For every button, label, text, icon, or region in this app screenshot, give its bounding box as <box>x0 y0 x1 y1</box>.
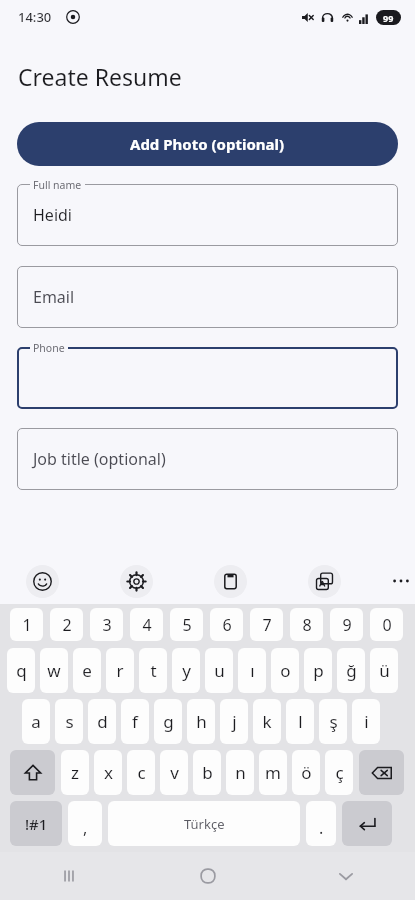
staticText: g <box>163 710 174 733</box>
button[interactable]: e <box>73 648 101 693</box>
button[interactable]: ğ <box>337 648 365 693</box>
staticText: Email <box>33 286 75 308</box>
staticText: ç <box>335 761 344 784</box>
staticText: h <box>196 710 207 733</box>
button[interactable]: More options <box>387 566 415 596</box>
button[interactable]: m <box>259 750 287 795</box>
staticText: f <box>132 710 138 733</box>
button[interactable]: 3 <box>90 608 123 641</box>
staticText: ı <box>250 659 255 682</box>
staticText: x <box>104 761 113 784</box>
staticText: 9 <box>342 614 352 636</box>
staticText: Heidi <box>33 204 72 226</box>
staticText: j <box>232 710 237 733</box>
staticText: k <box>262 710 272 733</box>
button[interactable]: Shift <box>10 750 55 795</box>
button[interactable]: f <box>121 699 149 744</box>
staticText: ö <box>301 761 312 784</box>
button[interactable]: l <box>286 699 314 744</box>
staticText: e <box>82 659 92 682</box>
button[interactable]: k <box>253 699 281 744</box>
button[interactable]: ç <box>325 750 353 795</box>
button[interactable]: Backspace <box>359 750 404 795</box>
button[interactable]: 8 <box>290 608 323 641</box>
staticText: 6 <box>222 614 232 636</box>
button[interactable]: z <box>61 750 89 795</box>
button[interactable]: ş <box>319 699 347 744</box>
button[interactable]: Clipboard <box>214 565 247 598</box>
button[interactable]: y <box>172 648 200 693</box>
staticText: 7 <box>262 614 272 636</box>
staticText: u <box>214 659 225 682</box>
button[interactable]: ı <box>238 648 266 693</box>
button[interactable]: 5 <box>170 608 203 641</box>
staticText: . <box>319 817 324 839</box>
button[interactable]: j <box>220 699 248 744</box>
staticText: !#1 <box>25 814 48 834</box>
button[interactable]: Job title (optional) <box>17 428 398 490</box>
button[interactable]: g <box>154 699 182 744</box>
staticText: d <box>97 710 108 733</box>
button[interactable]: p <box>304 648 332 693</box>
button[interactable]: u <box>205 648 233 693</box>
button[interactable]: ö <box>292 750 320 795</box>
button[interactable]: Phone <box>17 347 398 409</box>
button[interactable]: Translate <box>308 565 341 598</box>
button[interactable]: t <box>139 648 167 693</box>
button[interactable]: b <box>193 750 221 795</box>
staticText: c <box>137 761 146 784</box>
button[interactable]: Add Photo (optional) <box>17 122 398 166</box>
staticText: 99 <box>383 12 394 24</box>
button[interactable]: Recent apps <box>45 852 93 900</box>
button[interactable]: !#1 <box>10 801 62 846</box>
button[interactable]: 4 <box>130 608 163 641</box>
button[interactable]: a <box>22 699 50 744</box>
staticText: q <box>16 659 27 682</box>
staticText: Add Photo (optional) <box>130 134 285 154</box>
button[interactable]: ü <box>370 648 398 693</box>
button[interactable]: n <box>226 750 254 795</box>
staticText: 5 <box>182 614 192 636</box>
staticText: l <box>298 710 303 733</box>
staticText: r <box>116 659 124 682</box>
button[interactable]: Emoji <box>26 565 59 598</box>
button[interactable]: c <box>127 750 155 795</box>
staticText: 4 <box>142 614 152 636</box>
button[interactable]: 2 <box>50 608 83 641</box>
button[interactable]: Home <box>184 852 232 900</box>
button[interactable]: , <box>68 801 102 846</box>
button[interactable]: q <box>7 648 35 693</box>
staticText: Job title (optional) <box>33 448 166 470</box>
staticText: y <box>182 659 191 682</box>
button[interactable]: Enter <box>342 801 392 846</box>
button[interactable]: d <box>88 699 116 744</box>
button[interactable]: v <box>160 750 188 795</box>
button[interactable]: 9 <box>330 608 363 641</box>
button[interactable]: 7 <box>250 608 283 641</box>
button[interactable]: i <box>352 699 380 744</box>
staticText: , <box>83 817 88 839</box>
button[interactable]: Hide keyboard <box>322 852 370 900</box>
staticText: o <box>280 659 291 682</box>
button[interactable]: Full name <box>17 184 398 246</box>
button[interactable]: 6 <box>210 608 243 641</box>
button[interactable]: Email <box>17 266 398 328</box>
button[interactable]: x <box>94 750 122 795</box>
button[interactable]: s <box>55 699 83 744</box>
staticText: 2 <box>62 614 72 636</box>
button[interactable]: 1 <box>10 608 43 641</box>
button[interactable]: h <box>187 699 215 744</box>
button[interactable]: w <box>40 648 68 693</box>
staticText: z <box>71 761 79 784</box>
staticText: Create Resume <box>18 61 182 92</box>
button[interactable]: 0 <box>370 608 403 641</box>
button[interactable]: Türkçe <box>108 801 300 846</box>
button[interactable]: . <box>306 801 336 846</box>
button[interactable]: r <box>106 648 134 693</box>
button[interactable]: o <box>271 648 299 693</box>
staticText: m <box>265 761 281 784</box>
button[interactable]: Settings <box>120 565 153 598</box>
staticText: s <box>65 710 74 733</box>
staticText: a <box>31 710 41 733</box>
staticText: 1 <box>22 614 32 636</box>
